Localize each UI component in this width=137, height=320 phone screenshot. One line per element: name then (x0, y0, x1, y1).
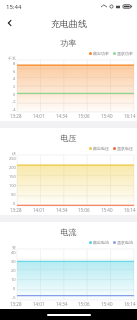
staticText: -2 (12, 99, 16, 104)
staticText: 14:34 (56, 207, 68, 213)
staticText: 额定电压 (93, 146, 109, 151)
button[interactable]: Back (0, 13, 20, 33)
staticText: 需求功率 (117, 51, 133, 56)
staticText: 功率 (0, 38, 137, 48)
staticText: -4 (12, 107, 16, 112)
button[interactable]: 电流 (0, 222, 137, 309)
staticText: 14:01 (33, 301, 45, 307)
staticText: 0 (13, 92, 16, 97)
staticText: 15:06 (78, 207, 90, 213)
staticText: 250 (9, 156, 16, 161)
staticText: 16:14 (124, 207, 136, 213)
staticText: -5 (12, 295, 16, 300)
staticText: 需求电流 (117, 240, 133, 245)
staticText: 15:40 (101, 113, 113, 119)
staticText: 15:44 (6, 3, 22, 11)
staticText: 200 (9, 165, 16, 170)
staticText: 伏 (12, 151, 16, 156)
staticText: 10 (11, 277, 16, 282)
staticText: 40 (11, 250, 16, 255)
button[interactable]: 电压 (0, 128, 137, 215)
staticText: 8 (13, 61, 16, 66)
staticText: 电压 (0, 133, 137, 143)
staticText: 13:28 (10, 301, 22, 307)
staticText: 15:06 (78, 113, 90, 119)
staticText: 0 (13, 201, 16, 206)
staticText: 电流 (0, 227, 137, 237)
staticText: 30 (11, 259, 16, 264)
staticText: 15:40 (101, 301, 113, 307)
staticText: 16:14 (124, 301, 136, 307)
staticText: 额定电流 (93, 240, 109, 245)
staticText: 2 (13, 84, 16, 89)
staticText: 14:34 (56, 113, 68, 119)
staticText: 14:01 (33, 113, 45, 119)
staticText: 20 (11, 268, 16, 273)
staticText: 50 (11, 192, 16, 197)
staticText: 千瓦 (8, 56, 16, 61)
staticText: 14:01 (33, 207, 45, 213)
staticText: 14:34 (56, 301, 68, 307)
staticText: 150 (9, 174, 16, 179)
staticText: 13:28 (10, 207, 22, 213)
staticText: 15:06 (78, 301, 90, 307)
staticText: 4 (13, 76, 16, 81)
staticText: 100 (9, 183, 16, 188)
staticText: 额定功率 (93, 51, 109, 56)
staticText: 安 (12, 245, 16, 250)
staticText: 15:40 (101, 207, 113, 213)
staticText: 16:14 (124, 113, 136, 119)
button[interactable]: 功率 (0, 33, 137, 121)
staticText: 0 (13, 286, 16, 291)
staticText: 6 (13, 69, 16, 74)
staticText: 充电曲线 (51, 18, 87, 29)
staticText: 需求电压 (117, 146, 133, 151)
staticText: 13:28 (10, 113, 22, 119)
